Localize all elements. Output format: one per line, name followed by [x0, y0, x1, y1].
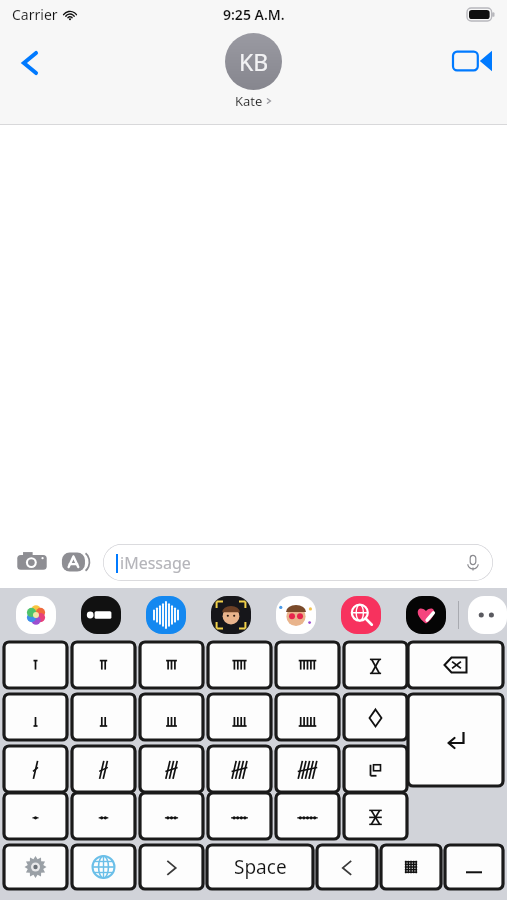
staticText: iMessage [120, 552, 191, 574]
button[interactable]: App [211, 596, 251, 634]
button[interactable]: Symbol key [344, 746, 407, 792]
button[interactable]: KB [225, 33, 282, 110]
button[interactable]: Key 3 [140, 694, 203, 740]
button[interactable]: Return [408, 694, 503, 786]
button[interactable]: Grid [381, 845, 441, 889]
button[interactable]: Key 4 [208, 694, 271, 740]
button[interactable]: Key 5 [276, 642, 339, 688]
button[interactable]: Symbol key [344, 793, 407, 839]
button[interactable]: Key 3 [140, 746, 203, 792]
staticText: 9:25 A.M. [223, 5, 285, 24]
button[interactable]: Key 5 [276, 694, 339, 740]
button[interactable]: Camera [16, 546, 48, 578]
staticText: Kate [235, 92, 263, 110]
button[interactable]: App [276, 596, 316, 634]
button[interactable]: App [406, 596, 446, 634]
button[interactable]: Key 3 [140, 793, 203, 839]
button[interactable]: App [341, 596, 381, 634]
button[interactable]: Key 1 [4, 793, 67, 839]
button[interactable]: Settings [4, 845, 67, 889]
button[interactable]: App [81, 596, 121, 634]
button[interactable]: Back [10, 42, 52, 84]
button[interactable]: Key 2 [72, 694, 135, 740]
button[interactable]: Key 2 [72, 642, 135, 688]
button[interactable]: Underscore [445, 845, 503, 889]
button[interactable]: Key 2 [72, 793, 135, 839]
button[interactable]: Next [140, 845, 203, 889]
button[interactable]: Key 1 [4, 642, 67, 688]
button[interactable]: Key 1 [4, 746, 67, 792]
button[interactable]: iMessage [103, 544, 493, 581]
button[interactable]: Previous [317, 845, 377, 889]
button[interactable]: App [16, 596, 56, 634]
button[interactable]: Key 3 [140, 642, 203, 688]
button[interactable]: Key 2 [72, 746, 135, 792]
staticText: Space [234, 854, 287, 880]
button[interactable]: Key 4 [208, 642, 271, 688]
button[interactable]: Backspace [408, 642, 503, 688]
button[interactable]: Apps [60, 546, 92, 578]
button[interactable]: Key 5 [276, 746, 339, 792]
button[interactable]: Change keyboard [72, 845, 135, 889]
button[interactable]: Symbol key [344, 642, 407, 688]
staticText: KB [239, 46, 269, 77]
button[interactable]: Key 4 [208, 746, 271, 792]
button[interactable]: Symbol key [344, 694, 407, 740]
button[interactable]: Space [207, 845, 313, 889]
button[interactable]: Key 5 [276, 793, 339, 839]
button[interactable]: Key 1 [4, 694, 67, 740]
button[interactable]: Key 4 [208, 793, 271, 839]
button[interactable]: App [468, 596, 507, 634]
button[interactable]: App [146, 596, 186, 634]
staticText: Carrier [12, 5, 58, 24]
button[interactable]: FaceTime video call [453, 46, 493, 76]
